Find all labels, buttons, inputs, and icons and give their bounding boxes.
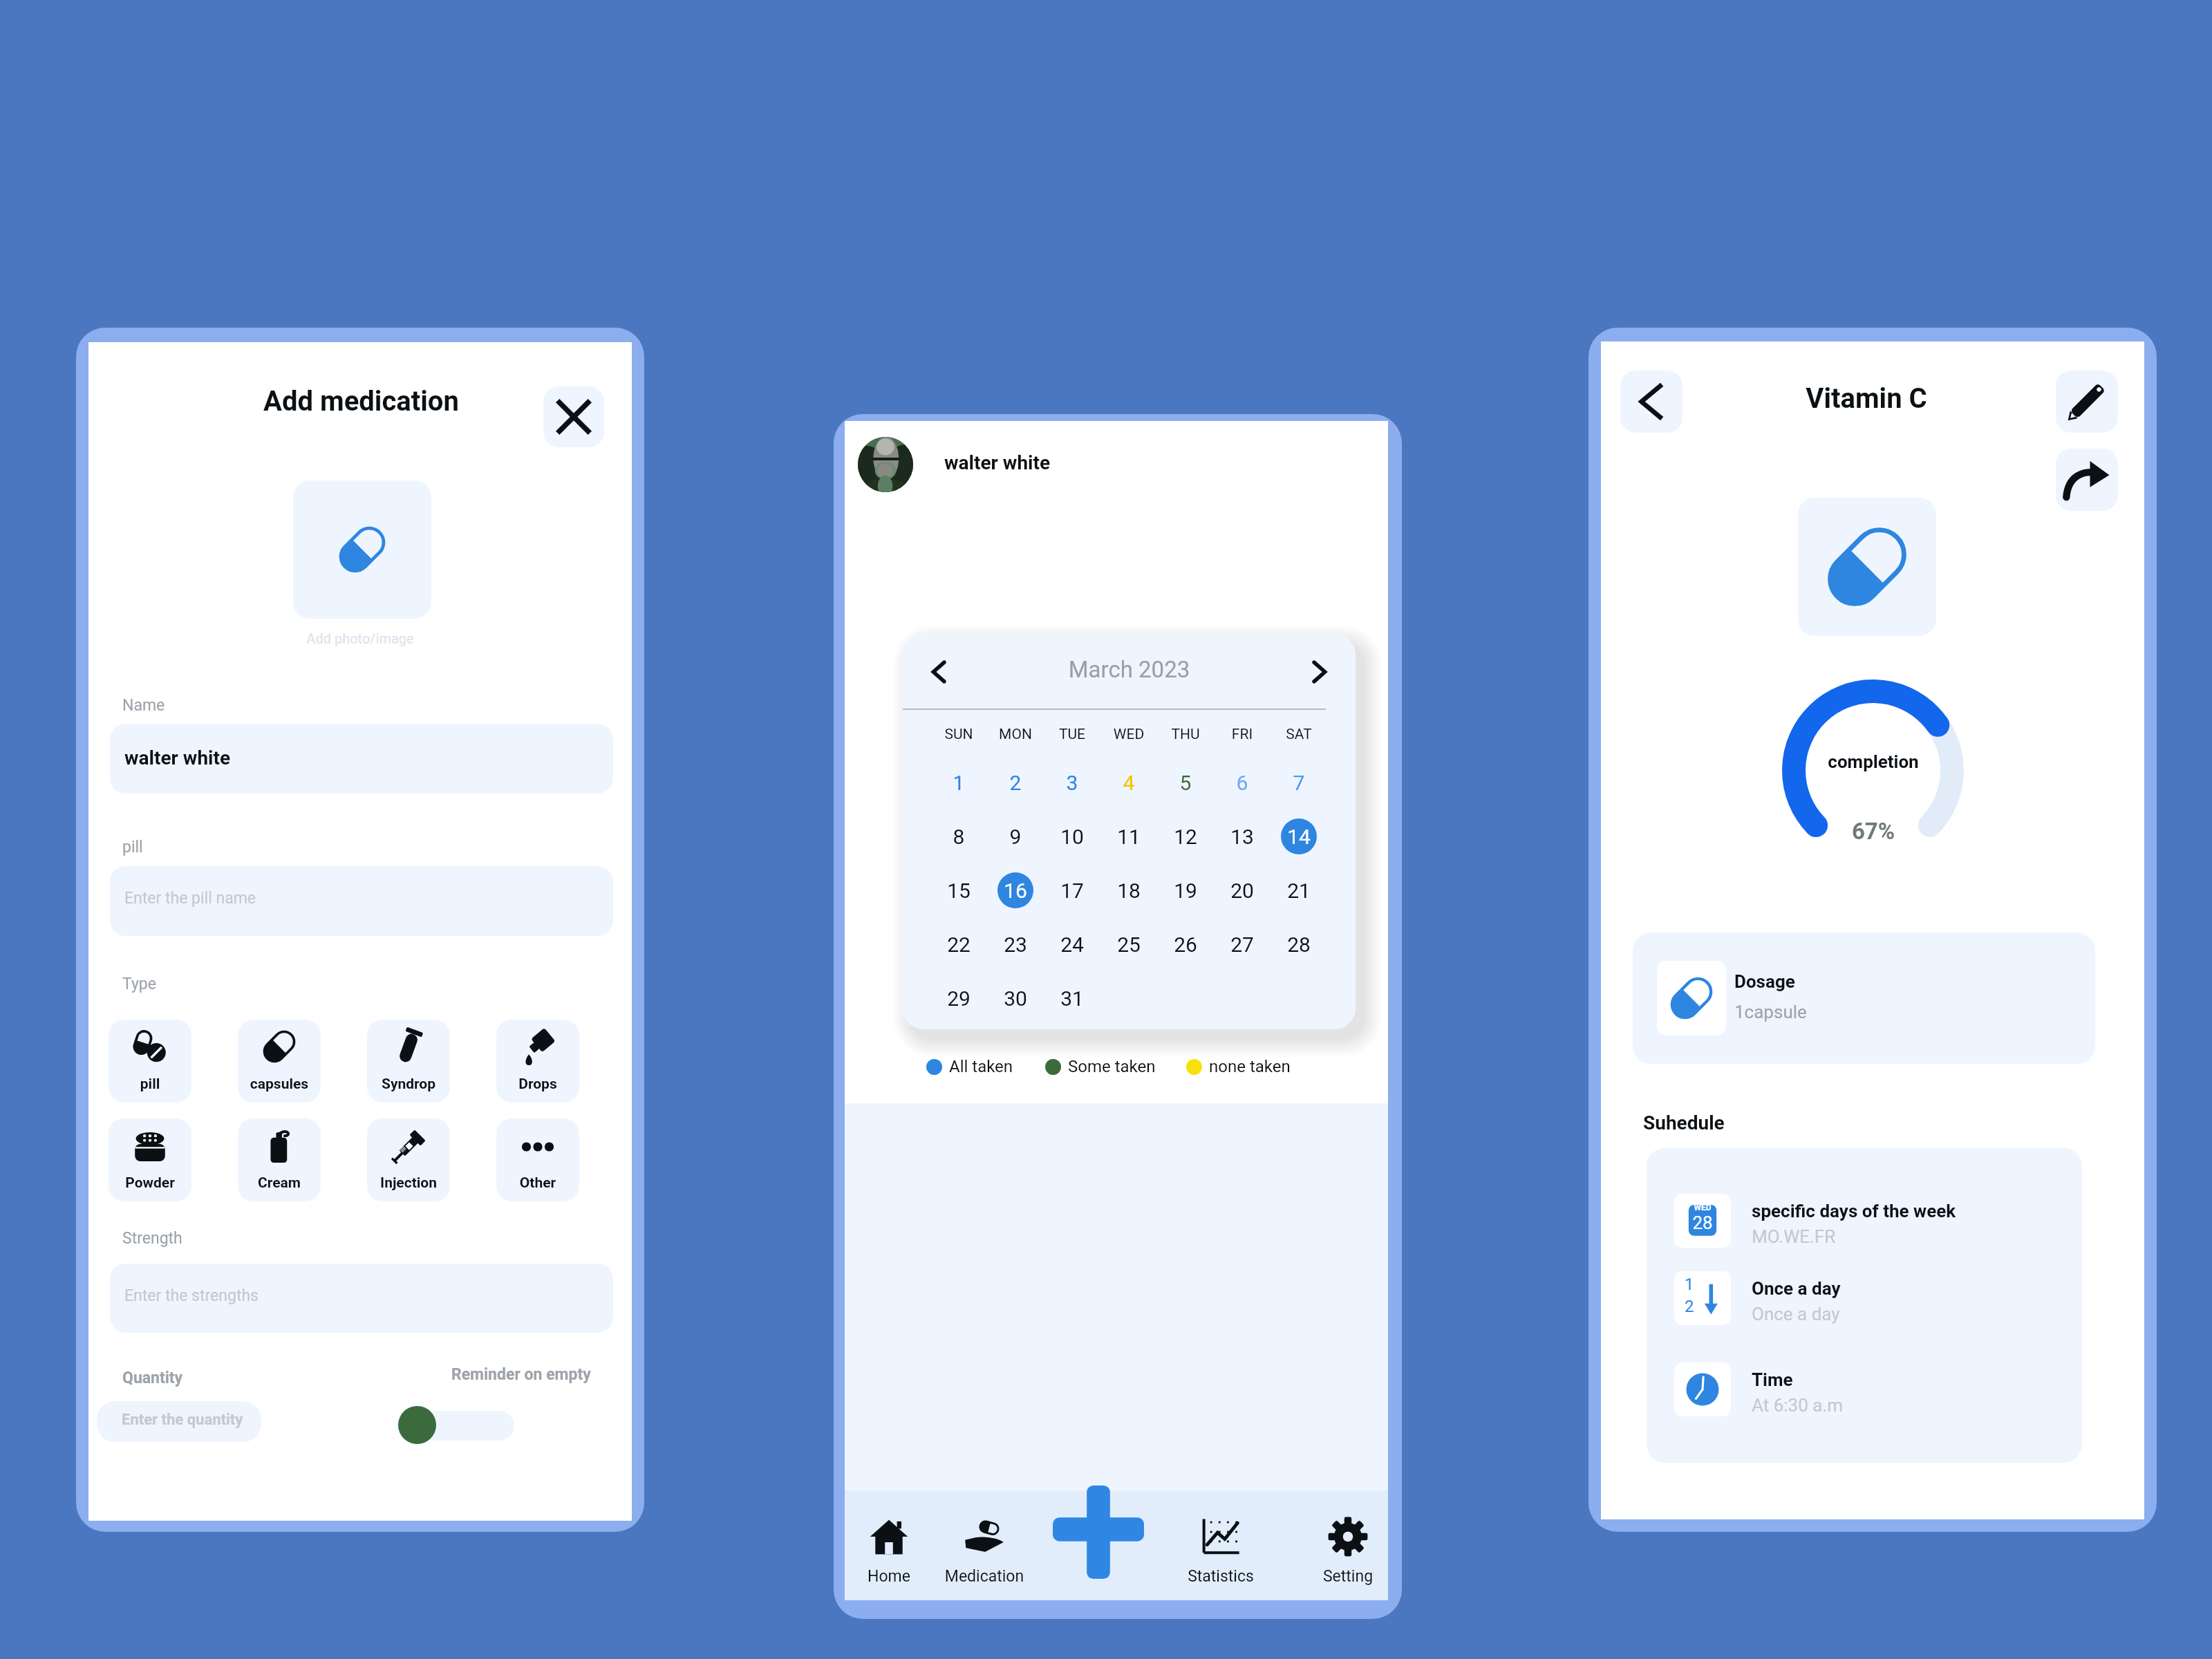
button[interactable] [987,975,1044,1021]
staticText: FRI [1214,726,1271,743]
button[interactable]: Syndrop [367,1020,450,1103]
staticText: MON [987,726,1044,743]
button[interactable]: Close [543,386,604,447]
button[interactable]: Add photo [293,480,431,619]
button[interactable] [987,921,1044,967]
button[interactable]: All taken [926,1057,1013,1076]
button[interactable]: Share [2056,449,2118,511]
button[interactable] [1214,868,1271,913]
staticText: 1 [930,771,987,795]
staticText: Home [834,1567,946,1586]
button[interactable] [930,975,987,1021]
staticText: Time [1752,1369,1793,1390]
staticText: 29 [930,986,987,1011]
staticText: 2 [987,771,1044,795]
button[interactable] [1271,921,1327,967]
staticText: Enter the strengths [124,1286,259,1305]
button[interactable]: capsules [238,1020,321,1103]
button[interactable]: Enter the strengths [110,1264,613,1333]
button[interactable]: 1 [1647,1271,2082,1340]
staticText: 30 [987,986,1044,1011]
button[interactable]: Back [1620,371,1683,433]
button[interactable]: none taken [1186,1057,1291,1076]
button[interactable]: Home [834,1490,946,1600]
staticText: 27 [1214,932,1271,957]
staticText: none taken [1209,1057,1291,1076]
staticText: 8 [930,825,987,849]
button[interactable] [1044,921,1100,967]
button[interactable] [1044,814,1100,859]
button[interactable]: Drops [496,1020,579,1103]
staticText: 19 [1157,879,1214,903]
button[interactable]: walter white [110,724,613,794]
staticText: Type [122,975,156,993]
staticText: Quantity [122,1369,183,1387]
button[interactable] [930,868,987,913]
staticText: 7 [1271,771,1327,795]
button[interactable]: Profile photo [858,437,913,492]
button[interactable]: Time [1647,1362,2082,1432]
button[interactable]: Dosage [1633,932,2095,1064]
button[interactable]: Powder [109,1118,191,1201]
staticText: Some taken [1068,1057,1156,1076]
staticText: THU [1157,726,1214,743]
staticText: 14 [1271,825,1327,849]
button[interactable]: Cream [238,1118,321,1201]
button[interactable] [1100,868,1157,913]
button[interactable] [987,868,1044,913]
button[interactable]: Next month [1299,652,1339,692]
button[interactable]: Statistics [1164,1490,1277,1600]
button[interactable]: Enter the quantity [97,1401,261,1442]
button[interactable]: Other [496,1118,579,1201]
button[interactable] [1157,868,1214,913]
button[interactable] [930,921,987,967]
staticText: March 2023 [903,656,1356,683]
button[interactable] [987,814,1044,859]
staticText: 13 [1214,825,1271,849]
button[interactable]: Edit [2056,371,2118,433]
button[interactable] [1271,868,1327,913]
staticText: Once a day [1752,1278,1841,1299]
staticText: MO.WE.FR [1752,1226,1836,1247]
button[interactable]: Setting [1291,1490,1402,1600]
button[interactable] [1214,921,1271,967]
button[interactable] [1100,814,1157,859]
staticText: 5 [1157,771,1214,795]
button[interactable] [1044,975,1100,1021]
button[interactable]: pill [109,1020,191,1103]
staticText: Other [496,1174,579,1192]
button[interactable]: Previous month [919,652,959,692]
staticText: SUN [930,726,987,743]
button[interactable] [1044,868,1100,913]
button[interactable]: Add medication [1053,1485,1144,1579]
button[interactable]: WED [1647,1194,2082,1263]
button[interactable]: Some taken [1045,1057,1156,1076]
button[interactable]: Medication [928,1490,1041,1600]
button[interactable] [930,814,987,859]
staticText: Vitamin C [1595,382,2138,415]
button[interactable] [1271,814,1327,859]
button[interactable] [1214,814,1271,859]
button[interactable] [1157,921,1214,967]
staticText: Cream [238,1174,321,1192]
staticText: walter white [944,451,1051,474]
button[interactable]: Enter the pill name [110,866,613,936]
staticText: Dosage [1734,971,1795,992]
staticText: 28 [1271,932,1327,957]
staticText: pill [109,1076,191,1093]
button[interactable]: Reminder on empty toggle [397,1403,514,1448]
staticText: Strength [122,1229,182,1248]
staticText: 6 [1214,771,1271,795]
staticText: pill [122,838,143,856]
staticText: 24 [1044,932,1100,957]
staticText: Suhedule [1643,1112,1725,1134]
staticText: 2 [1685,1297,1694,1316]
staticText: SAT [1271,726,1327,743]
staticText: Powder [109,1174,191,1192]
staticText: Add photo/image [88,630,632,646]
staticText: Add medication [263,385,459,418]
button[interactable] [1157,814,1214,859]
button[interactable]: Injection [367,1118,450,1201]
staticText: 67% [1782,818,1965,845]
button[interactable] [1100,921,1157,967]
